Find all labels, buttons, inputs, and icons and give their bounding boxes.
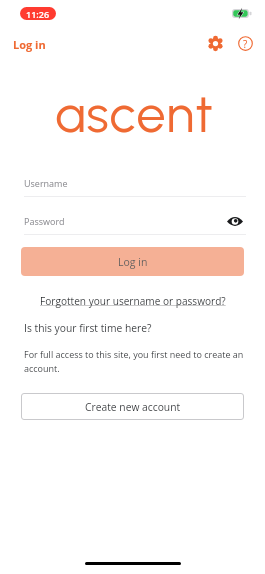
- staticText: Log in: [118, 255, 148, 269]
- staticText: 11:26: [26, 8, 50, 20]
- button[interactable]: Show password: [226, 213, 244, 229]
- staticText: For full access to this site, you first …: [24, 348, 249, 375]
- staticText: Create new account: [85, 400, 181, 414]
- staticText: Username: [24, 177, 68, 189]
- staticText: ascent: [55, 83, 214, 145]
- button[interactable]: Forgotten your username or password?: [40, 294, 226, 308]
- button[interactable]: Log in: [21, 247, 244, 276]
- button[interactable]: Settings: [203, 31, 227, 55]
- staticText: Log in: [13, 37, 46, 52]
- staticText: Password: [24, 215, 65, 227]
- button[interactable]: Help: [233, 31, 257, 55]
- staticText: Is this your first time here?: [24, 321, 152, 335]
- button[interactable]: Create new account: [21, 393, 244, 420]
- staticText: ?: [243, 37, 248, 51]
